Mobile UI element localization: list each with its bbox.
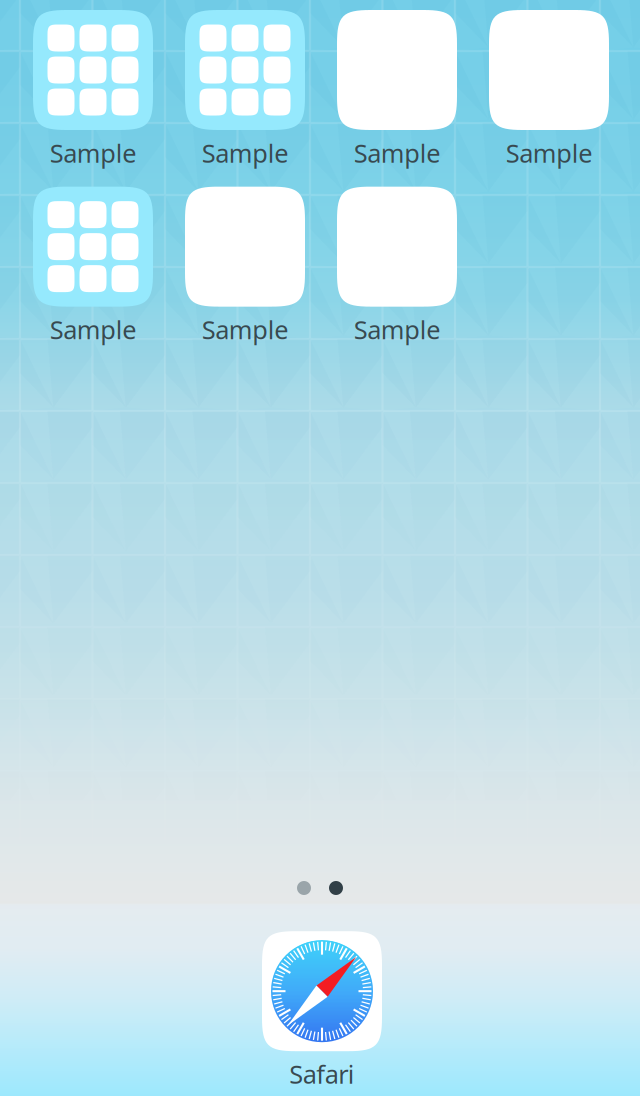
button[interactable]: Sample [185,187,305,346]
staticText: Sample [202,313,288,346]
staticText: Sample [506,136,592,170]
button[interactable]: Page 2, current page [329,881,343,895]
staticText: Sample [202,136,288,170]
button[interactable]: Safari [262,931,382,1091]
staticText: Sample [354,313,440,346]
button[interactable]: Sample [337,10,457,170]
staticText: Sample [50,136,136,170]
button[interactable]: Sample [33,10,153,170]
button[interactable]: Sample [33,187,153,346]
button[interactable]: Sample [185,10,305,170]
staticText: Sample [50,313,136,346]
staticText: Safari [289,1057,355,1091]
button[interactable]: Sample [489,10,609,170]
button[interactable]: Sample [337,187,457,346]
button[interactable]: Page 1 [297,881,311,895]
staticText: Sample [354,136,440,170]
